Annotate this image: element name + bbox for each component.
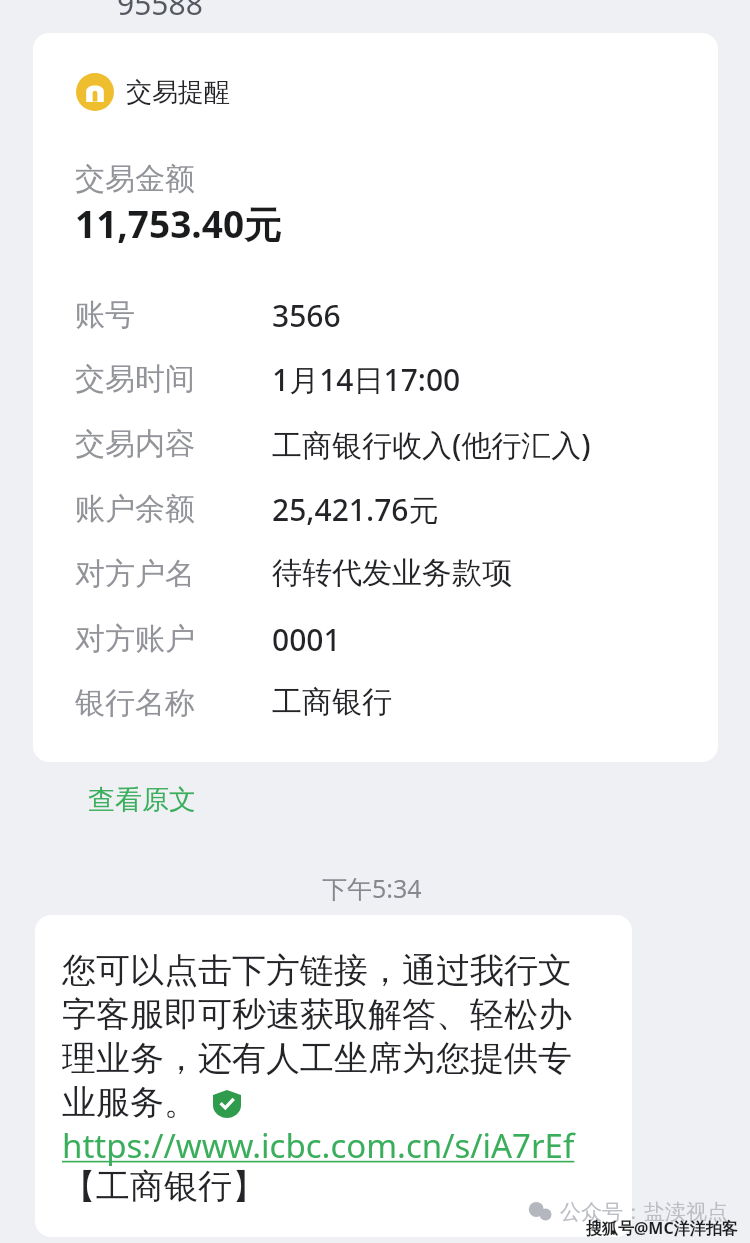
staticText: 账户余额 [75, 490, 195, 528]
other: ICBC bank logo [76, 73, 114, 111]
other: Verified link [213, 1090, 241, 1118]
staticText: 对方账户 [75, 620, 195, 658]
staticText: 【工商银行】 [62, 1165, 266, 1208]
staticText: 查看原文 [88, 783, 196, 817]
staticText: 0001 [272, 619, 341, 660]
staticText: 95588 [117, 0, 203, 24]
staticText: 25,421.76元 [272, 489, 439, 530]
staticText: 11,753.40元 [75, 198, 282, 249]
button[interactable]: ICBC bank logo [33, 33, 718, 762]
staticText: 工商银行 [272, 683, 392, 721]
staticText: 3566 [272, 295, 341, 336]
staticText: https://www.icbc.com.cn/s/iA7rEf [62, 1123, 575, 1168]
staticText: 对方户名 [75, 555, 195, 593]
staticText: 账号 [75, 296, 135, 334]
staticText: 交易金额 [75, 160, 195, 198]
staticText: 您可以点击下方链接，通过我行文字客服即可秒速获取解答、轻松办理业务，还有人工坐席… [62, 949, 582, 1124]
staticText: 银行名称 [75, 684, 195, 722]
staticText: 工商银行收入(他行汇入) [272, 424, 591, 465]
staticText: 搜狐号@MC洋洋拍客 [586, 1217, 738, 1239]
staticText: 下午5:34 [322, 871, 422, 905]
staticText: 交易时间 [75, 360, 195, 398]
button[interactable]: 查看原文 [80, 777, 204, 823]
staticText: 待转代发业务款项 [272, 554, 512, 592]
staticText: 公众号：盐渎视点 [560, 1199, 728, 1225]
button[interactable]: https://www.icbc.com.cn/s/iA7rEf [62, 1123, 575, 1168]
staticText: 1月14日17:00 [272, 359, 461, 400]
staticText: 交易内容 [75, 425, 195, 463]
button[interactable]: 您可以点击下方链接，通过我行文字客服即可秒速获取解答、轻松办理业务，还有人工坐席… [35, 915, 632, 1237]
staticText: 交易提醒 [126, 76, 230, 109]
